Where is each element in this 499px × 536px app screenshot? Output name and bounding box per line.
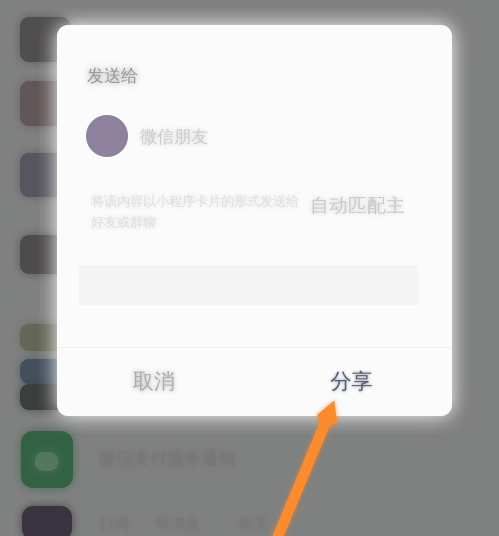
staticText: 发送给 xyxy=(87,65,138,86)
button[interactable]: 取消 xyxy=(55,347,252,416)
staticText: 自动匹配主 xyxy=(310,194,405,217)
staticText: 将该内容以小程序卡片的形式发送给 xyxy=(91,193,299,209)
staticText: 取消 xyxy=(133,368,175,395)
button[interactable]: 分享 xyxy=(252,347,450,416)
staticText: 好友或群聊 xyxy=(91,214,156,230)
staticText: 分享 xyxy=(330,368,372,395)
staticText: 微信朋友 xyxy=(140,126,208,147)
